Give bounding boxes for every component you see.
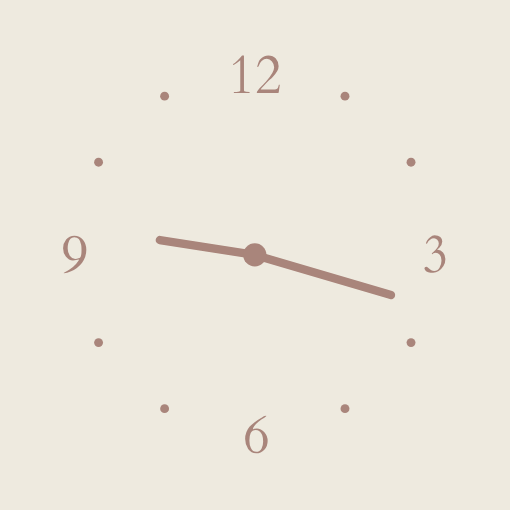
button[interactable]: Analog watch face showing 9:18 [0, 0, 510, 510]
